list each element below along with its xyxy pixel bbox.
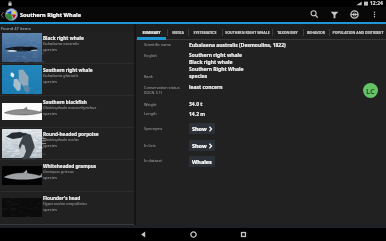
staticText: species	[43, 207, 58, 213]
button[interactable]: Round-headed porpoise	[0, 128, 134, 159]
staticText: least concern	[189, 84, 223, 91]
staticText: Black right whale	[189, 59, 233, 66]
staticText: Rank	[144, 74, 153, 79]
button[interactable]: More options	[364, 7, 384, 22]
staticText: SYSTEMATICS	[193, 30, 217, 35]
button[interactable]: Offline mode	[344, 7, 364, 22]
staticText: 14.2 m	[189, 111, 206, 118]
staticText: Globicephala melas	[43, 137, 79, 143]
staticText: MEDIA	[172, 30, 184, 35]
staticText: SUMMARY	[142, 30, 161, 35]
button[interactable]: SYSTEMATICS	[188, 24, 222, 40]
button[interactable]: Whiteheaded grampus	[0, 160, 134, 191]
staticText: 34.0 t	[189, 101, 203, 108]
staticText: Eubalaena glacialis	[43, 73, 79, 79]
staticText: Weight	[144, 102, 157, 107]
staticText: Synonyms	[144, 126, 163, 131]
staticText: species	[43, 111, 58, 117]
staticText: Globicephala macrorhynchus	[43, 105, 97, 111]
button[interactable]: Home	[168, 228, 218, 241]
staticText: Eubalaena australis	[43, 41, 79, 47]
staticText: species	[43, 143, 58, 149]
staticText: (IUCN 3.1)	[144, 90, 162, 95]
button[interactable]: SUMMARY	[136, 24, 167, 40]
button[interactable]: Southern blackfish	[0, 96, 134, 127]
button[interactable]: Navigate up	[0, 7, 19, 22]
staticText: Found 47 items	[1, 26, 31, 32]
staticText: species	[43, 79, 58, 85]
button[interactable]: POPULATION AND DISTRIBUT	[329, 24, 386, 40]
staticText: Grampus griseus	[43, 169, 74, 175]
button[interactable]: Back	[118, 228, 168, 241]
button[interactable]: Recent apps	[218, 228, 268, 241]
button[interactable]: BEHAVIOR	[303, 24, 329, 40]
button[interactable]: Black right whale	[0, 32, 134, 63]
staticText: Southern Right Whale	[189, 66, 244, 73]
staticText: species	[189, 73, 208, 80]
staticText: Scientific name	[144, 42, 171, 47]
staticText: Eubalaena australis (Desmoulins, 1822)	[189, 42, 286, 49]
staticText: SOUTHERN RIGHT WHALE	[225, 30, 270, 35]
staticText: Flounder's head	[43, 195, 81, 201]
button[interactable]: SOUTHERN RIGHT WHALE	[222, 24, 272, 40]
staticText: Southern blackfish	[43, 99, 87, 105]
staticText: POPULATION AND DISTRIBUT	[332, 30, 384, 35]
button[interactable]: Show	[189, 140, 215, 151]
staticText: TAXONOMY	[277, 30, 298, 35]
button[interactable]: Filter	[324, 7, 344, 22]
staticText: Conservation status	[144, 85, 180, 90]
button[interactable]: MEDIA	[167, 24, 188, 40]
staticText: Black right whale	[43, 35, 84, 41]
staticText: Southern right whale	[43, 67, 93, 73]
staticText: species	[43, 175, 58, 181]
staticText: In dataset	[144, 158, 162, 163]
staticText: Southern right whale	[189, 52, 242, 59]
button[interactable]: TAXONOMY	[272, 24, 303, 40]
staticText: Length	[144, 111, 157, 116]
staticText: Hyperoodon ampullatus	[43, 201, 87, 207]
staticText: Whales	[192, 158, 212, 165]
staticText: In lists	[144, 143, 156, 148]
staticText: Show	[192, 142, 207, 149]
staticText: BEHAVIOR	[307, 30, 325, 35]
staticText: 12:24	[370, 0, 383, 7]
staticText: English	[144, 53, 157, 58]
staticText: species	[43, 47, 58, 53]
staticText: Round-headed porpoise	[43, 131, 99, 137]
button[interactable]: Whales	[189, 156, 215, 167]
staticText: Southern Right Whale	[20, 11, 82, 19]
button[interactable]: Show	[189, 123, 215, 134]
staticText: Show	[192, 125, 207, 132]
button[interactable]: Search	[304, 7, 324, 22]
staticText: Whiteheaded grampus	[43, 163, 97, 169]
button[interactable]: Flounder's head	[0, 192, 134, 223]
staticText: LC	[366, 86, 375, 96]
button[interactable]: Southern right whale	[0, 64, 134, 95]
